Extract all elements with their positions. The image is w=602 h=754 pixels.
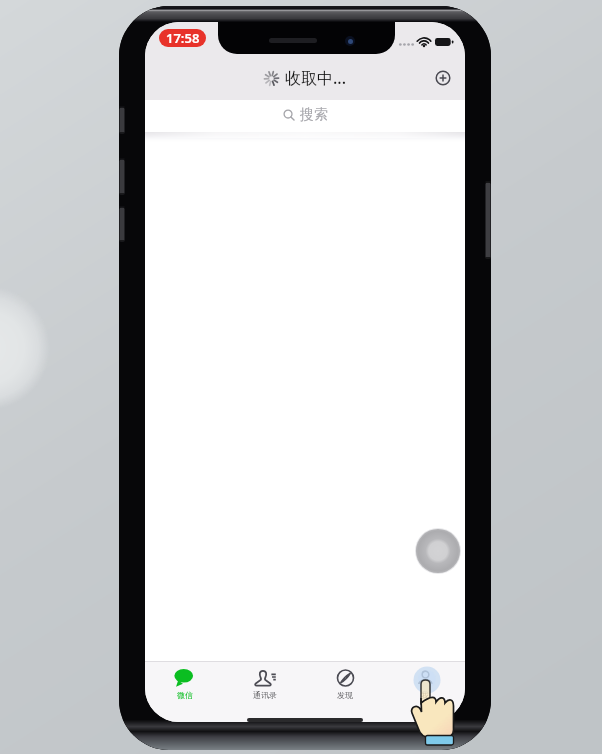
staticText: 通讯录 — [253, 690, 277, 700]
staticText: 收取中... — [285, 67, 347, 89]
button[interactable]: 我 — [385, 661, 465, 710]
staticText: 17:58 — [166, 29, 200, 47]
button[interactable]: AssistiveTouch — [415, 528, 461, 574]
staticText: 我 — [421, 690, 429, 700]
staticText: 搜索 — [300, 106, 328, 124]
staticText: 发现 — [337, 690, 353, 700]
button[interactable]: Add — [432, 67, 454, 89]
staticText: 微信 — [177, 690, 193, 700]
button[interactable]: 通讯录 — [225, 661, 305, 710]
button[interactable]: 搜索 — [145, 100, 465, 132]
button[interactable]: 发现 — [305, 661, 385, 710]
button[interactable]: 微信 — [145, 661, 225, 710]
